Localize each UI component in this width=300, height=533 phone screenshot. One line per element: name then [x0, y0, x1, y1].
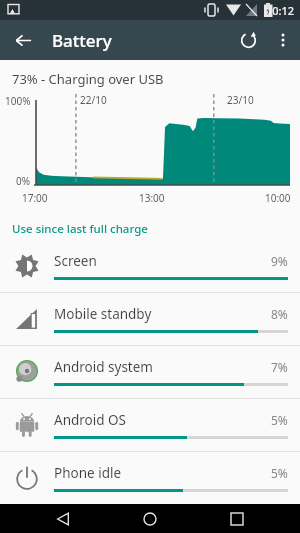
staticText: 8%: [271, 306, 288, 322]
staticText: 13:00: [139, 191, 165, 205]
staticText: 10:00: [265, 191, 291, 205]
button[interactable]: Screen: [0, 240, 300, 292]
button[interactable]: Android OS: [0, 399, 300, 451]
staticText: 73% - Charging over USB: [12, 70, 164, 88]
staticText: Phone idle: [54, 464, 271, 482]
staticText: Mobile standby: [54, 305, 271, 323]
staticText: Android OS: [54, 411, 271, 429]
staticText: 22/10: [80, 93, 107, 107]
button[interactable]: Android system: [0, 346, 300, 398]
staticText: 7%: [271, 359, 288, 375]
staticText: Screen: [54, 252, 271, 270]
staticText: 100%: [5, 94, 31, 108]
button[interactable]: Home: [126, 504, 174, 533]
staticText: Battery: [52, 29, 112, 52]
staticText: 10:12: [266, 3, 295, 18]
staticText: 5%: [271, 465, 288, 481]
button[interactable]: Use since last full charge: [0, 218, 300, 240]
button[interactable]: More options: [266, 23, 300, 57]
staticText: 9%: [271, 253, 288, 269]
staticText: 0%: [16, 174, 31, 188]
staticText: 5%: [271, 412, 288, 428]
staticText: 17:00: [22, 191, 48, 205]
staticText: Use since last full charge: [12, 221, 148, 237]
button[interactable]: Refresh: [230, 22, 266, 58]
button[interactable]: Back: [39, 504, 87, 533]
staticText: Android system: [54, 358, 271, 376]
button[interactable]: Back: [6, 23, 40, 57]
button[interactable]: Mobile standby: [0, 293, 300, 345]
button[interactable]: Recents: [213, 504, 261, 533]
button[interactable]: Phone idle: [0, 452, 300, 504]
staticText: 23/10: [227, 93, 254, 107]
